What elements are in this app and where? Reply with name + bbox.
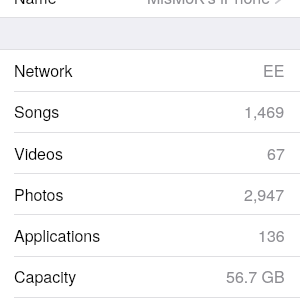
staticText: 136 [258,224,285,247]
button[interactable]: Videos [0,133,300,174]
staticText: Photos [14,183,64,206]
button[interactable]: Photos [0,174,300,215]
other: Edit device name [271,0,292,18]
staticText: Songs [14,100,60,123]
staticText: 2,947 [244,183,285,206]
staticText: Capacity [14,265,77,288]
staticText: 67 [267,142,285,165]
button[interactable]: Capacity [0,256,300,297]
button[interactable]: Name [0,0,300,18]
staticText: MisMoK's iPhone [147,0,271,9]
staticText: Network [14,59,73,82]
staticText: EE [263,59,285,82]
staticText: Applications [14,224,101,247]
button[interactable]: Network [0,50,300,91]
staticText: Name [14,0,57,9]
staticText: 1,469 [244,100,285,123]
button[interactable]: Applications [0,215,300,256]
button[interactable]: Songs [0,91,300,132]
staticText: 56.7 GB [226,265,285,288]
staticText: Videos [14,142,63,165]
